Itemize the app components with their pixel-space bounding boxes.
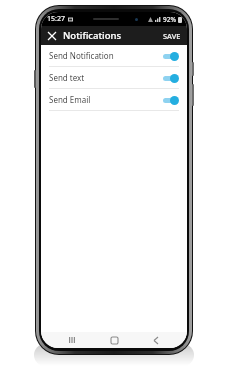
button[interactable]: Close [45,29,59,43]
staticText: Send Notification [49,50,114,61]
button[interactable]: Back [145,332,167,348]
button[interactable]: Toggle on [162,73,179,83]
button[interactable]: Toggle on [162,51,179,61]
button[interactable]: Send text [41,67,187,89]
staticText: Notifications [63,29,122,42]
button[interactable]: Toggle on [162,95,179,105]
button[interactable]: Home [103,332,125,348]
staticText: 92% [163,15,176,24]
staticText: SAVE [163,31,181,41]
button[interactable]: Recents [61,332,83,348]
button[interactable]: Send Notification [41,45,187,67]
staticText: Send text [49,72,85,83]
button[interactable]: Send Email [41,89,187,111]
button[interactable]: SAVE [160,29,184,43]
staticText: Send Email [49,94,91,105]
staticText: 15:27 [47,14,65,24]
